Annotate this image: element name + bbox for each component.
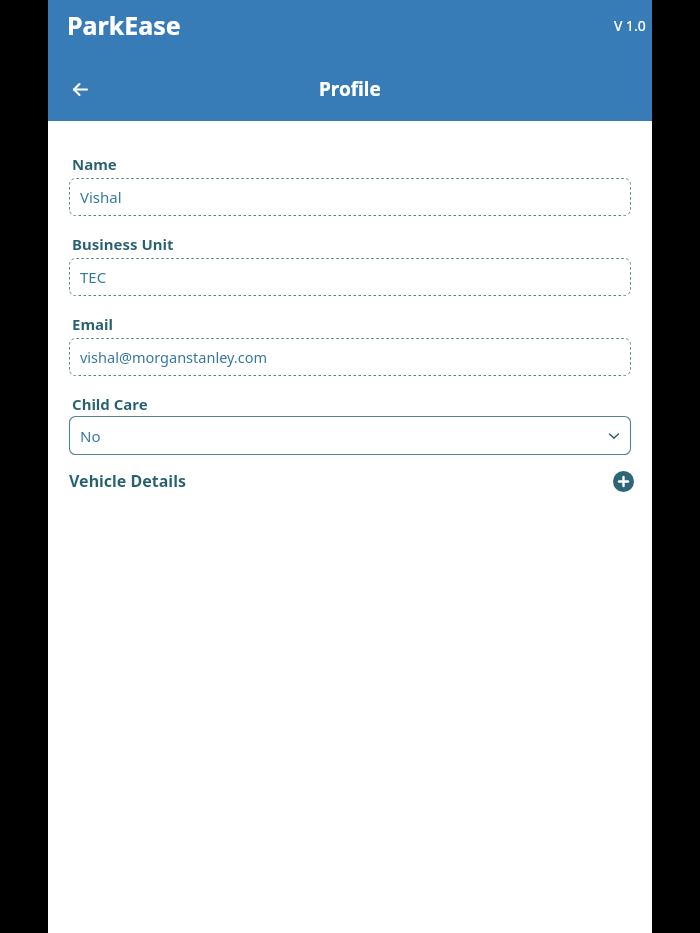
staticText: Vehicle Details: [69, 470, 186, 492]
button[interactable]: vishal@morganstanley.com: [69, 338, 631, 376]
staticText: vishal@morganstanley.com: [80, 347, 268, 367]
staticText: Child Care: [72, 394, 148, 414]
button[interactable]: TEC: [69, 258, 631, 296]
button[interactable]: No: [69, 416, 631, 455]
staticText: ParkEase: [67, 8, 181, 42]
staticText: Name: [72, 154, 117, 174]
button[interactable]: Vehicle Details: [69, 470, 631, 492]
staticText: No: [80, 426, 101, 446]
staticText: Email: [72, 314, 113, 334]
staticText: V 1.0: [614, 16, 646, 35]
staticText: Vishal: [80, 187, 122, 207]
button[interactable]: [66, 75, 94, 103]
staticText: Business Unit: [72, 234, 174, 254]
button[interactable]: Vishal: [69, 178, 631, 216]
staticText: TEC: [80, 267, 107, 287]
staticText: Profile: [319, 76, 381, 102]
